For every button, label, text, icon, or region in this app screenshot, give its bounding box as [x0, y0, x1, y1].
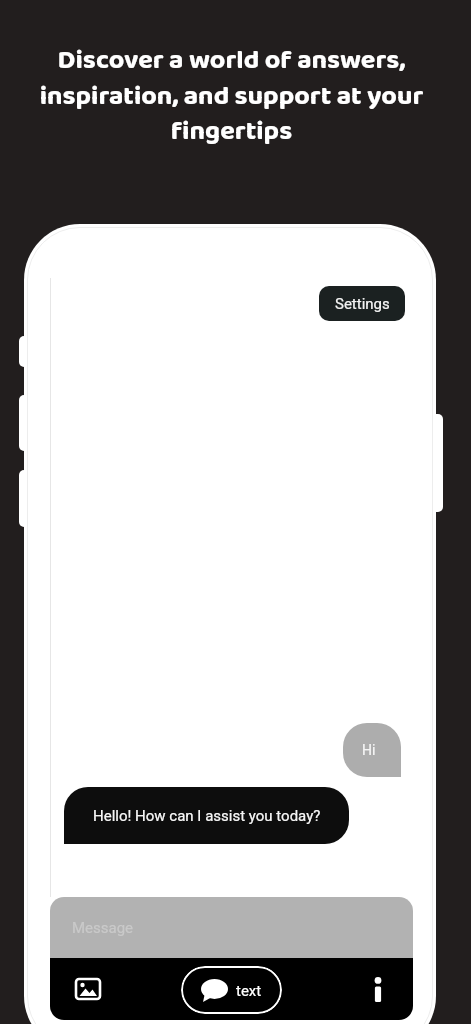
button[interactable]: Settings	[319, 286, 405, 321]
button[interactable]: text	[181, 966, 282, 1014]
staticText: Discover a world of answers, inspiration…	[0, 39, 467, 153]
button[interactable]: Message	[50, 897, 413, 958]
button[interactable]	[360, 970, 396, 1008]
staticText: Hi	[362, 742, 376, 758]
button[interactable]	[68, 970, 108, 1008]
staticText: text	[236, 982, 262, 1000]
staticText: Message	[72, 919, 134, 937]
staticText: Hello! How can I assist you today?	[93, 807, 321, 825]
staticText: Settings	[335, 295, 390, 313]
